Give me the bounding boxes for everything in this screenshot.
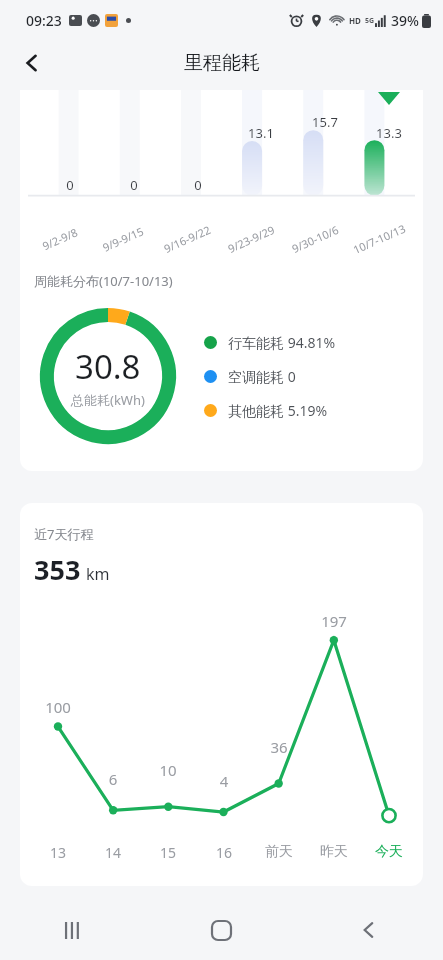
button[interactable]: Back — [10, 41, 54, 85]
staticText: 总能耗(kWh) — [71, 391, 145, 409]
staticText: 5G — [365, 16, 375, 26]
staticText: 0 — [118, 176, 150, 194]
button[interactable]: 15 — [150, 843, 186, 862]
staticText: 353 — [34, 551, 81, 588]
staticText: 近7天行程 — [34, 525, 94, 543]
staticText: 13.3 — [373, 124, 405, 142]
staticText: 39% — [391, 11, 419, 30]
staticText: 9/2-9/8 — [40, 224, 80, 253]
button[interactable]: Recent apps — [0, 900, 147, 960]
staticText: 9/9-9/15 — [100, 223, 146, 255]
staticText: 9/23-9/29 — [225, 222, 277, 256]
staticText: 10 — [150, 760, 186, 780]
button[interactable]: 行车能耗 94.81% — [204, 333, 336, 352]
staticText: 0 — [54, 176, 86, 194]
button[interactable]: 昨天 — [316, 843, 352, 861]
button[interactable]: 16 — [206, 843, 242, 862]
staticText: 9/16-9/22 — [161, 222, 213, 256]
staticText: 09:23 — [26, 11, 62, 30]
button[interactable]: 空调能耗 0 — [204, 367, 296, 386]
staticText: 13.1 — [245, 124, 277, 142]
staticText: HD — [349, 15, 361, 26]
staticText: 30.8 — [75, 344, 141, 389]
button[interactable]: 13 — [40, 843, 76, 862]
button[interactable]: 其他能耗 5.19% — [204, 401, 328, 420]
staticText: 0 — [182, 176, 214, 194]
staticText: 10/7-10/13 — [351, 221, 408, 257]
staticText: 36 — [261, 737, 297, 757]
staticText: 周能耗分布(10/7-10/13) — [34, 272, 173, 290]
button[interactable]: Home — [147, 900, 295, 960]
staticText: 里程能耗 — [184, 51, 260, 75]
button[interactable]: 14 — [95, 843, 131, 862]
staticText: 空调能耗 0 — [228, 367, 296, 386]
staticText: 9/30-10/6 — [289, 222, 341, 256]
staticText: 197 — [316, 611, 352, 631]
button[interactable]: 前天 — [261, 843, 297, 861]
staticText: 行车能耗 94.81% — [228, 333, 336, 352]
staticText: 其他能耗 5.19% — [228, 401, 328, 420]
staticText: 15.7 — [309, 113, 341, 131]
button[interactable]: Back — [295, 900, 443, 960]
staticText: km — [86, 563, 110, 585]
button[interactable]: 今天 — [371, 843, 407, 861]
staticText: 6 — [95, 769, 131, 789]
staticText: 100 — [40, 697, 76, 717]
staticText: 4 — [206, 771, 242, 791]
